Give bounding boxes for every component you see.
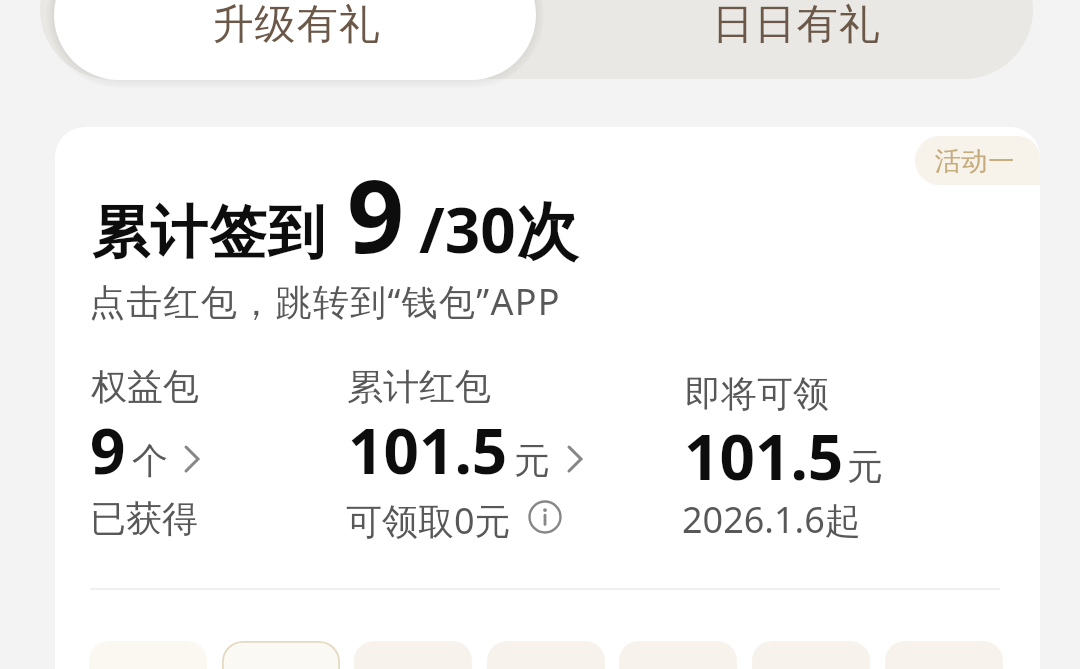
other: More xyxy=(566,444,586,474)
staticText: /30次 xyxy=(419,187,578,272)
other: More xyxy=(183,444,203,474)
staticText: 2026.1.6起 xyxy=(682,495,861,544)
staticText: 可领取0元 xyxy=(346,496,511,545)
button[interactable] xyxy=(619,641,737,669)
staticText: 101.5 xyxy=(684,414,844,498)
button[interactable]: 日日有礼 xyxy=(545,0,1026,80)
button[interactable]: 升级有礼 xyxy=(54,0,536,80)
button[interactable]: 累计红包 xyxy=(339,357,639,537)
staticText: 101.5 xyxy=(348,408,508,492)
button[interactable] xyxy=(354,641,472,669)
button[interactable]: 权益包 xyxy=(83,357,323,537)
staticText: 个 xyxy=(132,438,168,483)
staticText: 活动一 xyxy=(935,145,1015,178)
staticText: 日日有礼 xyxy=(712,0,880,51)
staticText: 点击红包，跳转到“钱包”APP xyxy=(89,277,561,326)
staticText: 升级有礼 xyxy=(212,0,380,51)
staticText: 已获得 xyxy=(90,496,198,541)
button[interactable]: 活动一 xyxy=(915,136,1040,185)
staticText: 累计红包 xyxy=(347,364,491,409)
button[interactable] xyxy=(885,641,1003,669)
other: Info xyxy=(528,500,562,534)
button[interactable] xyxy=(222,641,340,669)
button[interactable] xyxy=(487,641,605,669)
staticText: 累计签到 xyxy=(92,197,327,269)
staticText: 元 xyxy=(847,444,883,489)
button[interactable] xyxy=(752,641,870,669)
staticText: 9 xyxy=(90,408,126,492)
staticText: 即将可领 xyxy=(685,371,829,416)
staticText: 权益包 xyxy=(91,364,199,409)
staticText: 9 xyxy=(347,146,405,282)
staticText: 元 xyxy=(514,438,550,483)
